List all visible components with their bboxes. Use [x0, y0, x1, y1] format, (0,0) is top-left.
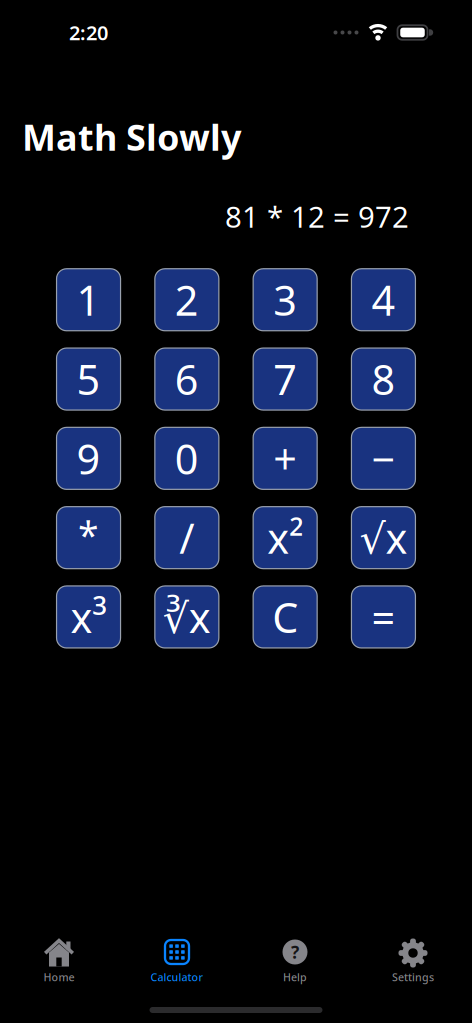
staticText: * — [78, 510, 99, 559]
staticText: 5 — [77, 352, 101, 406]
staticText: − — [371, 431, 395, 486]
staticText: C — [272, 589, 298, 644]
staticText: 81 * 12 = 972 — [225, 197, 409, 236]
staticText: 2 — [175, 272, 199, 327]
staticText: 6 — [175, 352, 199, 406]
staticText: Home — [43, 970, 74, 984]
staticText: √x — [359, 510, 407, 565]
staticText: + — [273, 431, 297, 486]
staticText: 9 — [77, 431, 101, 486]
staticText: 1 — [77, 272, 101, 327]
staticText: 0 — [175, 431, 199, 486]
staticText: Settings — [392, 970, 434, 984]
staticText: ∛x — [163, 589, 211, 644]
staticText: / — [179, 510, 194, 565]
staticText: x² — [267, 510, 303, 565]
staticText: 7 — [273, 352, 297, 406]
staticText: 3 — [273, 272, 297, 327]
staticText: Calculator — [150, 970, 203, 984]
staticText: 2:20 — [69, 19, 108, 46]
staticText: ? — [291, 940, 299, 963]
staticText: Help — [283, 970, 307, 984]
staticText: 8 — [371, 352, 395, 406]
staticText: Math Slowly — [22, 113, 242, 161]
staticText: 4 — [371, 272, 395, 327]
staticText: = — [371, 589, 395, 644]
staticText: x³ — [71, 589, 107, 644]
